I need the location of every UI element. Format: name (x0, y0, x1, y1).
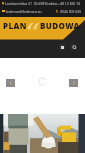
staticText: PLAN (3, 20, 27, 31)
staticText: Lanckorońska 21, 30-698 Kraków (5, 1, 58, 5)
staticText: +48 12 365 74 56 (58, 1, 82, 5)
button[interactable]: Menu (59, 44, 65, 50)
staticText: bylemon@bylemon.eu (6, 9, 42, 13)
staticText: BUDOWA (40, 20, 80, 31)
button[interactable]: Next slide (69, 79, 78, 87)
staticText: 0044 305 045 (60, 9, 82, 13)
button[interactable]: Search (71, 44, 77, 50)
button[interactable]: Previous slide (6, 79, 15, 87)
